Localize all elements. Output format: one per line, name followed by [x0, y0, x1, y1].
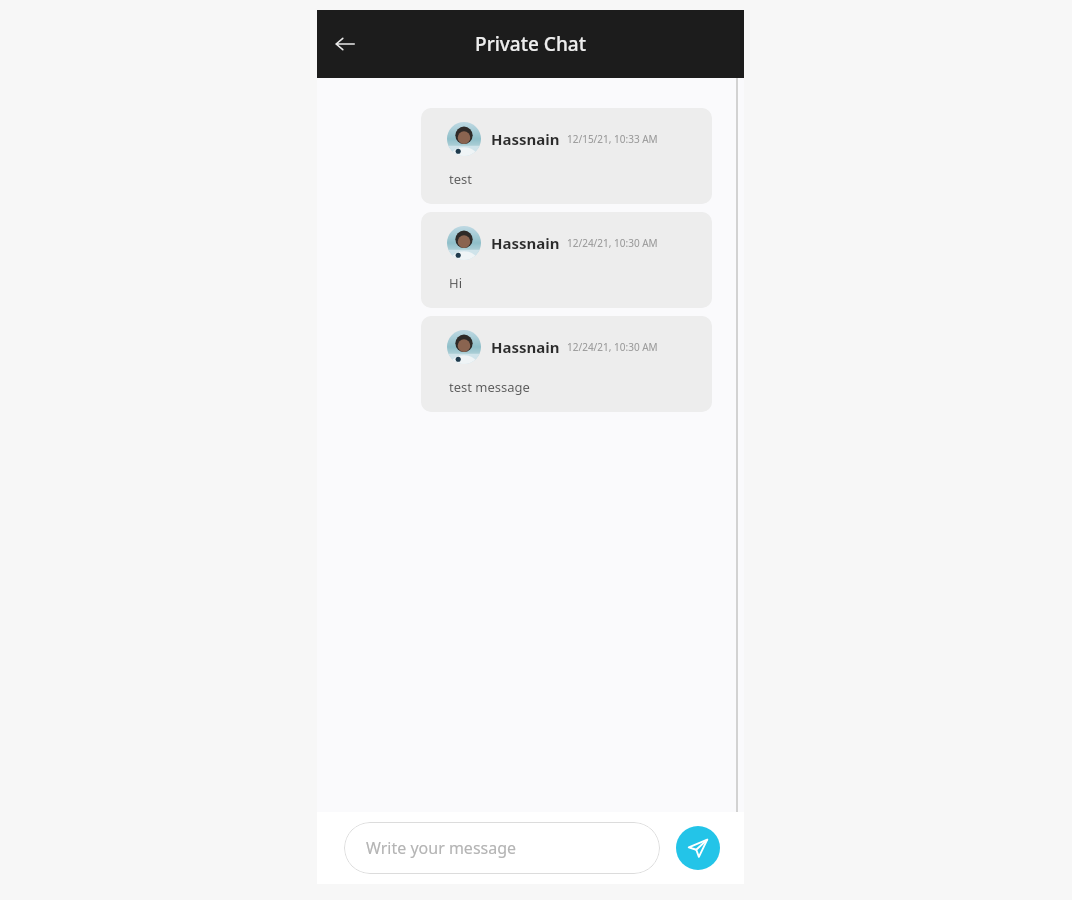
- staticText: Private Chat: [475, 31, 586, 57]
- staticText: Write your message: [366, 837, 517, 859]
- staticText: test message: [449, 378, 530, 396]
- button[interactable]: Write your message: [344, 822, 660, 874]
- button[interactable]: Send: [676, 826, 720, 870]
- staticText: Hassnain: [491, 337, 560, 357]
- button[interactable]: Back: [323, 22, 367, 66]
- staticText: 12/24/21, 10:30 AM: [567, 340, 658, 354]
- staticText: 12/15/21, 10:33 AM: [567, 132, 658, 146]
- staticText: Hassnain: [491, 129, 560, 149]
- button[interactable]: Hassnain: [421, 212, 712, 308]
- staticText: Hi: [449, 274, 462, 292]
- staticText: test: [449, 170, 472, 188]
- staticText: 12/24/21, 10:30 AM: [567, 236, 658, 250]
- button[interactable]: Hassnain: [421, 316, 712, 412]
- staticText: Hassnain: [491, 233, 560, 253]
- button[interactable]: Hassnain: [421, 108, 712, 204]
